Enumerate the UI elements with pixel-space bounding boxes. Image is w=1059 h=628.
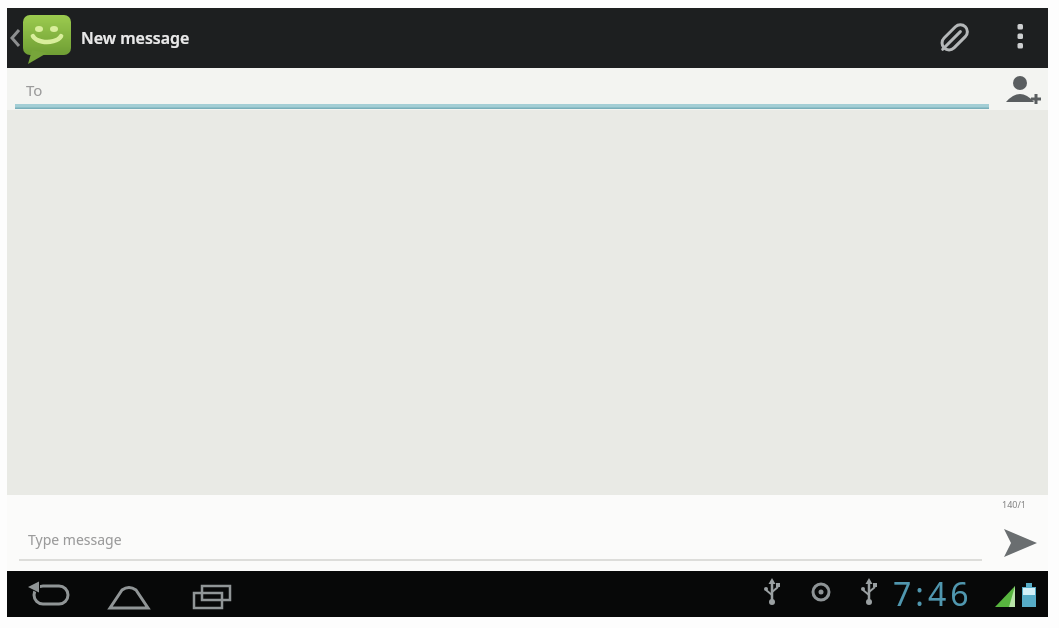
button[interactable] — [24, 576, 80, 612]
button[interactable] — [992, 523, 1048, 567]
button[interactable] — [998, 68, 1046, 110]
button[interactable]: To — [7, 68, 1048, 110]
button[interactable]: New message — [7, 8, 190, 68]
staticText: 7:46 — [893, 572, 973, 616]
button[interactable] — [926, 8, 982, 68]
staticText: 140/1 — [1002, 498, 1026, 510]
button[interactable] — [184, 576, 240, 612]
button[interactable] — [1000, 8, 1040, 68]
button[interactable] — [102, 576, 162, 612]
button[interactable]: Type message — [7, 521, 987, 561]
staticText: Type message — [28, 530, 122, 549]
staticText: New message — [81, 27, 190, 49]
staticText: To — [26, 80, 43, 100]
